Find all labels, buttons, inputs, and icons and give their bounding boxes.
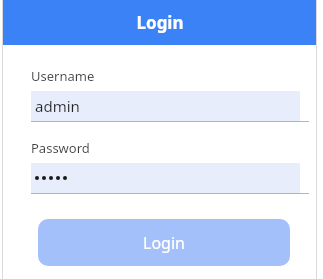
- button[interactable]: Login: [3, 0, 316, 45]
- staticText: admin: [35, 96, 80, 116]
- staticText: Password: [31, 139, 90, 157]
- button[interactable]: Login: [38, 219, 290, 266]
- button[interactable]: admin: [31, 91, 300, 121]
- button[interactable]: [31, 163, 300, 193]
- staticText: Username: [31, 67, 95, 85]
- staticText: Login: [136, 11, 184, 34]
- staticText: Login: [143, 232, 185, 254]
